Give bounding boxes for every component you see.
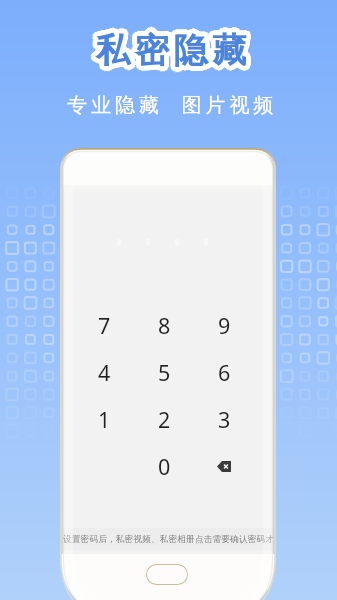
staticText: 7 bbox=[98, 311, 111, 340]
staticText: 9 bbox=[218, 311, 231, 340]
staticText: 3 bbox=[218, 405, 231, 434]
button[interactable]: 5 bbox=[134, 349, 194, 396]
button[interactable] bbox=[63, 528, 273, 550]
other: Backspace bbox=[217, 461, 231, 472]
button[interactable]: 9 bbox=[194, 302, 254, 349]
staticText: 5 bbox=[158, 358, 171, 387]
button[interactable]: 4 bbox=[74, 349, 134, 396]
button[interactable]: 8 bbox=[134, 302, 194, 349]
button[interactable]: Home bbox=[146, 564, 188, 585]
staticText: 8 bbox=[158, 311, 171, 340]
button[interactable]: 0 bbox=[134, 443, 194, 490]
staticText: 6 bbox=[218, 358, 231, 387]
button[interactable]: 6 bbox=[194, 349, 254, 396]
button[interactable]: 1 bbox=[74, 396, 134, 443]
staticText: 2 bbox=[158, 405, 171, 434]
button[interactable]: 3 bbox=[194, 396, 254, 443]
staticText: 1 bbox=[98, 405, 111, 434]
button[interactable]: 2 bbox=[134, 396, 194, 443]
staticText: 0 bbox=[158, 452, 171, 481]
staticText: 4 bbox=[98, 358, 111, 387]
button[interactable]: Backspace bbox=[194, 443, 254, 490]
button[interactable]: 7 bbox=[74, 302, 134, 349]
